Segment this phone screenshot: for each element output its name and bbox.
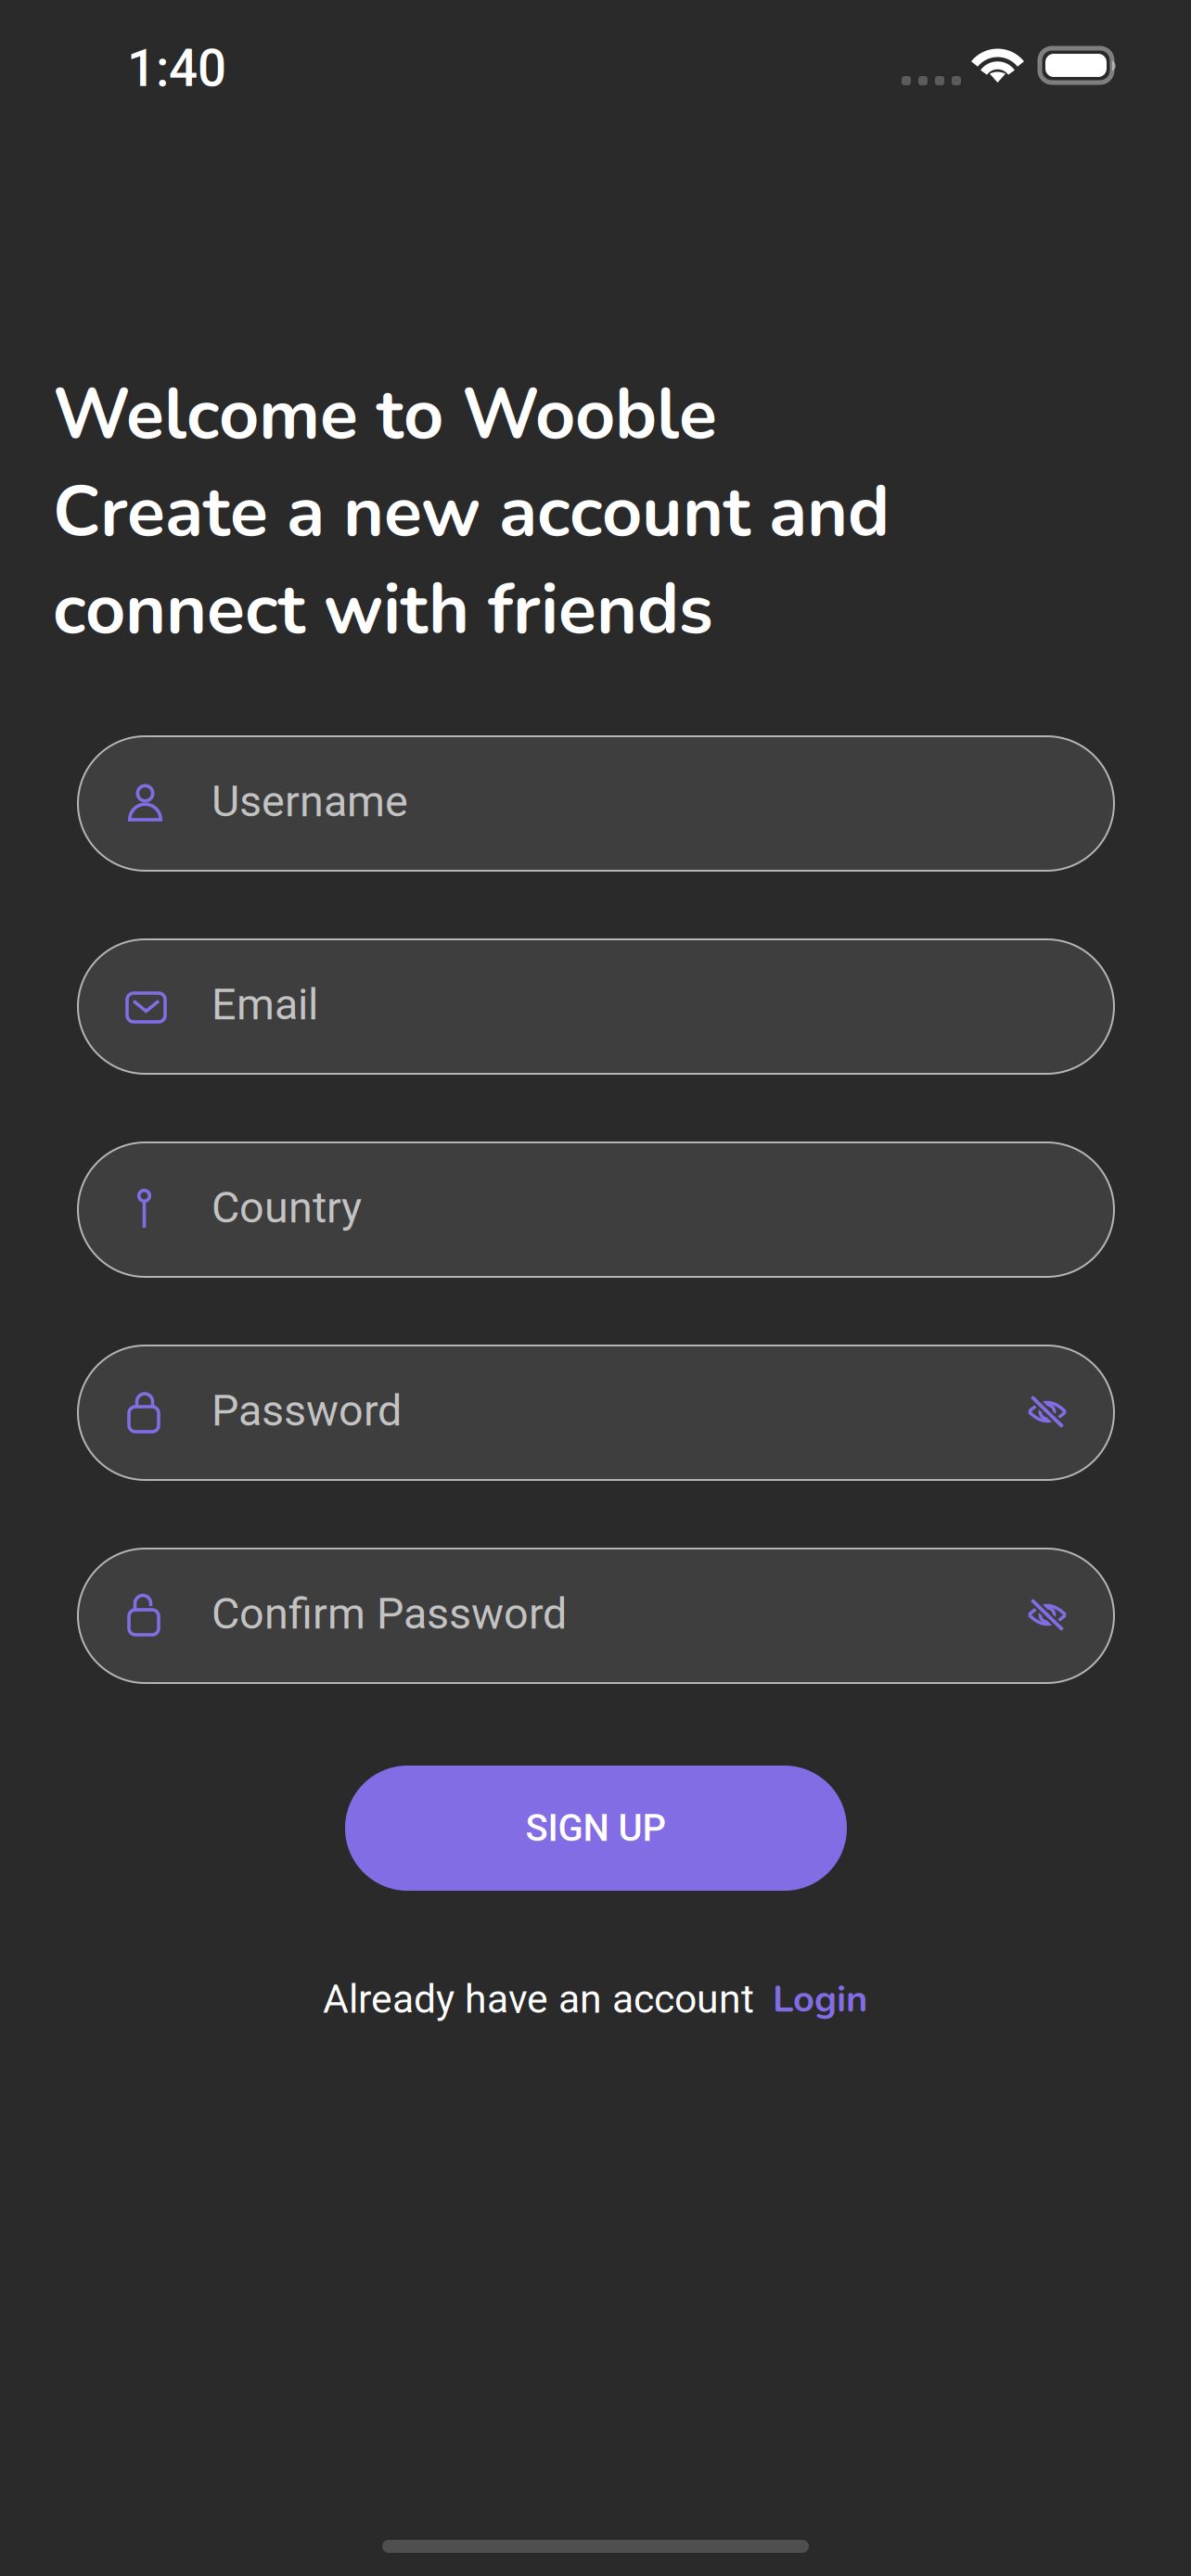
staticText: Username [211,776,408,827]
button[interactable]: Password [78,1345,1114,1480]
button[interactable]: Confirm Password [78,1549,1114,1683]
button[interactable]: SIGN UP [345,1766,847,1891]
staticText: Already have an account [323,1976,754,2022]
button[interactable]: Email [78,939,1114,1074]
staticText: connect with friends [53,562,713,657]
staticText: Password [211,1385,402,1436]
staticText: 1:40 [127,39,226,98]
staticText: SIGN UP [525,1806,666,1850]
staticText: Welcome to Wooble [53,367,717,463]
button[interactable]: Username [78,736,1114,871]
staticText: Email [211,979,318,1030]
staticText: Login [773,1974,867,2025]
staticText: Confirm Password [211,1588,567,1639]
button[interactable]: Country [78,1142,1114,1277]
button[interactable]: Already have an account [323,1971,867,2027]
staticText: Country [211,1182,362,1233]
staticText: Create a new account and [53,465,890,560]
